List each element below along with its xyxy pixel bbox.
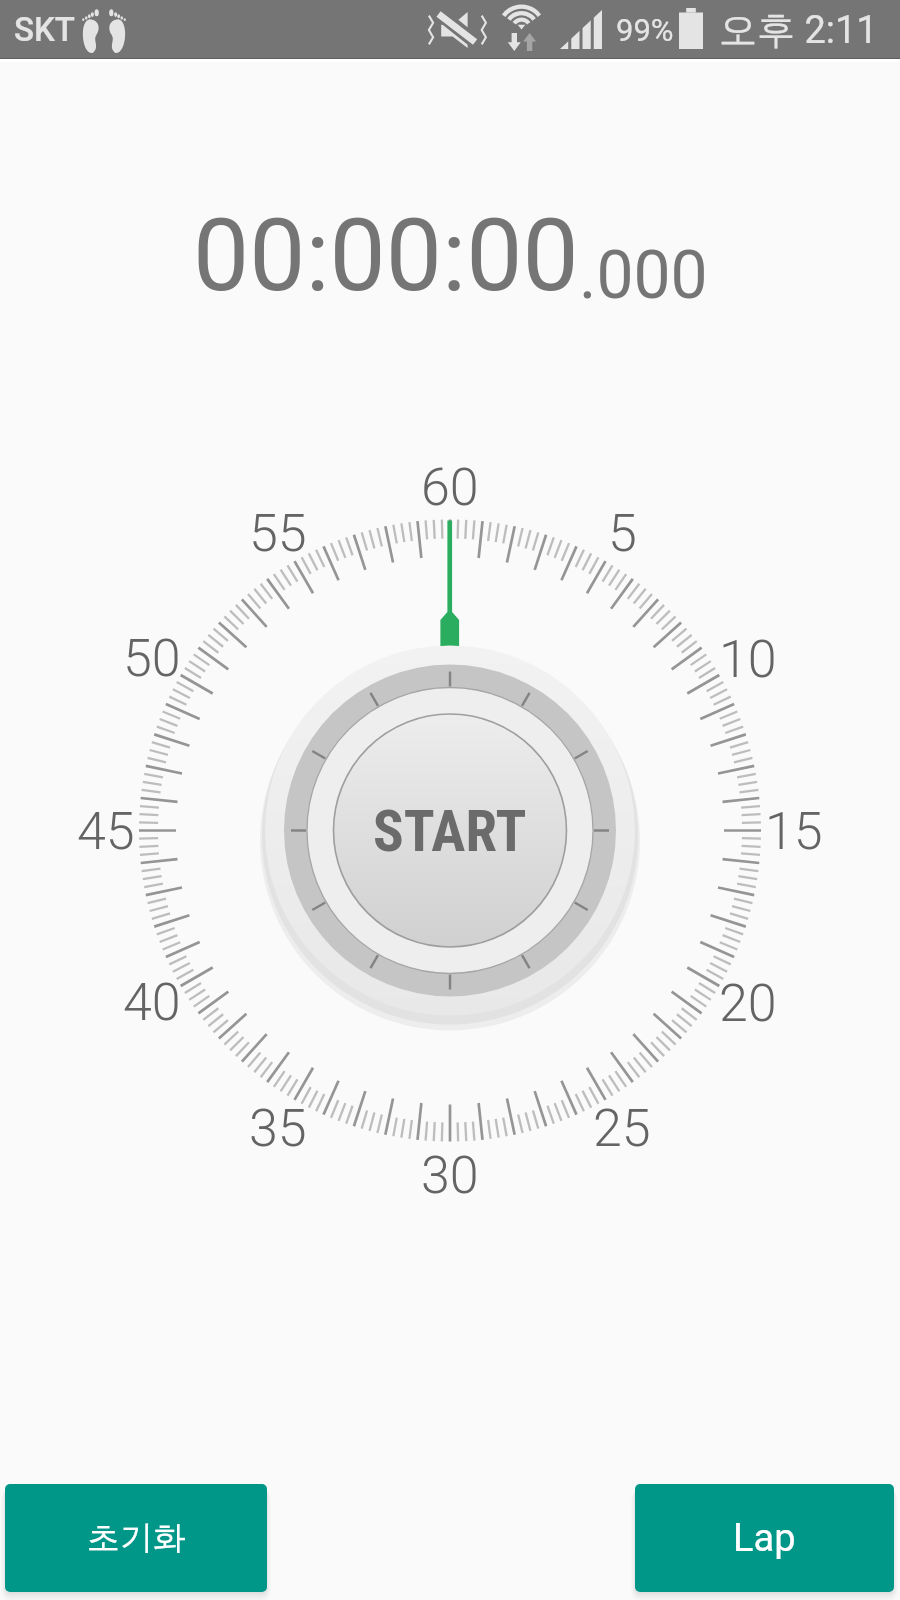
- staticText: .000: [579, 237, 708, 314]
- staticText: 40: [123, 972, 181, 1033]
- other: Signal strength: [560, 10, 602, 49]
- staticText: Lap: [733, 1516, 796, 1561]
- staticText: 35: [249, 1098, 307, 1159]
- other: T membership: [80, 7, 128, 51]
- button[interactable]: START: [333, 714, 567, 948]
- staticText: 50: [123, 628, 181, 689]
- staticText: 10: [719, 629, 777, 690]
- other: Sound off, vibrate: [428, 10, 488, 50]
- other: Battery 99 percent: [679, 8, 703, 49]
- staticText: 15: [765, 801, 823, 862]
- staticText: 초기화: [87, 1517, 186, 1559]
- staticText: SKT: [14, 10, 75, 49]
- staticText: 30: [421, 1145, 479, 1206]
- staticText: START: [373, 798, 527, 865]
- staticText: 45: [77, 801, 135, 862]
- button[interactable]: Lap: [635, 1484, 894, 1592]
- staticText: 5: [608, 503, 637, 564]
- staticText: 99%: [616, 12, 674, 48]
- staticText: 25: [593, 1098, 651, 1159]
- staticText: 00:00:00: [193, 197, 579, 314]
- other: Wi-Fi: [499, 8, 544, 51]
- button[interactable]: 초기화: [5, 1484, 267, 1592]
- staticText: 오후 2:11: [719, 6, 878, 54]
- staticText: 20: [719, 973, 777, 1034]
- staticText: 60: [421, 457, 479, 518]
- staticText: 55: [249, 503, 307, 564]
